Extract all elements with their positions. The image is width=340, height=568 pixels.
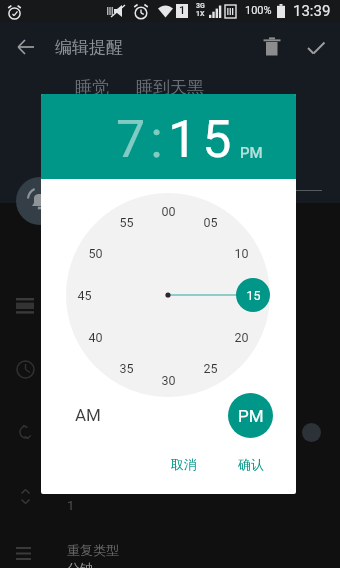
- staticText: 13:39: [293, 2, 331, 20]
- button[interactable]: 25: [193, 351, 227, 385]
- button[interactable]: 15: [236, 278, 270, 312]
- staticText: 1: [67, 498, 75, 513]
- staticText: PM: [240, 144, 263, 162]
- staticText: 睡觉: [75, 77, 109, 98]
- staticText: 35: [119, 361, 134, 376]
- button[interactable]: 45: [67, 278, 101, 312]
- button[interactable]: AM: [65, 399, 111, 431]
- staticText: 25: [203, 361, 218, 376]
- staticText: PM: [238, 406, 264, 426]
- staticText: 100%: [245, 4, 272, 17]
- button[interactable]: Back: [12, 33, 40, 61]
- staticText: 15: [246, 288, 261, 303]
- button[interactable]: 05: [193, 205, 227, 239]
- staticText: 30: [161, 373, 176, 388]
- button[interactable]: 睡到天黑: [125, 73, 215, 102]
- staticText: 确认: [238, 456, 264, 472]
- button[interactable]: 30: [151, 363, 185, 397]
- button[interactable]: Reminder icon: [16, 177, 64, 225]
- button[interactable]: 55: [109, 205, 143, 239]
- button[interactable]: Save: [303, 32, 331, 60]
- staticText: 编辑提醒: [55, 37, 123, 58]
- staticText: 50: [88, 246, 103, 261]
- staticText: 重复类型: [67, 542, 119, 558]
- staticText: 20: [234, 330, 249, 345]
- staticText: 分钟: [67, 560, 93, 568]
- staticText: 3G: [196, 2, 205, 10]
- button[interactable]: 00: [151, 194, 185, 228]
- staticText: 15: [168, 109, 237, 170]
- button[interactable]: 50: [78, 236, 112, 270]
- staticText: 10: [234, 246, 249, 261]
- staticText: 1X: [196, 10, 205, 18]
- staticText: 05: [203, 215, 218, 230]
- button[interactable]: 20: [224, 320, 258, 354]
- staticText: AM: [75, 405, 101, 425]
- button[interactable]: 确认: [228, 450, 274, 478]
- staticText: 55: [119, 215, 134, 230]
- staticText: 00: [161, 204, 176, 219]
- staticText: 40: [88, 330, 103, 345]
- button[interactable]: 睡觉: [64, 73, 120, 102]
- staticText: 取消: [171, 456, 197, 472]
- button[interactable]: Delete: [258, 32, 286, 60]
- button[interactable]: 35: [109, 351, 143, 385]
- staticText: 睡到天黑: [136, 77, 204, 98]
- button[interactable]: 40: [78, 320, 112, 354]
- button[interactable]: PM: [228, 393, 273, 438]
- button[interactable]: 取消: [161, 450, 207, 478]
- button[interactable]: 10: [224, 236, 258, 270]
- staticText: 1: [179, 4, 186, 17]
- staticText: 7:: [116, 109, 168, 170]
- staticText: 45: [77, 288, 92, 303]
